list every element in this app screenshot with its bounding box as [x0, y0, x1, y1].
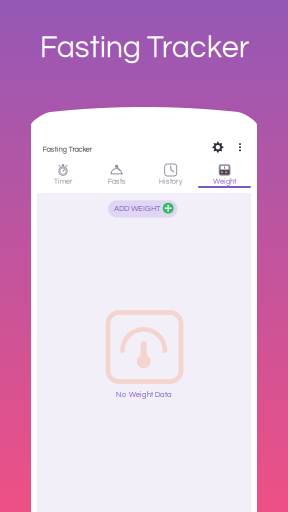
- staticText: History: [159, 178, 183, 185]
- staticText: No Weight Data: [116, 391, 172, 399]
- staticText: Fasting Tracker: [43, 146, 93, 153]
- button[interactable]: More options: [236, 140, 244, 154]
- staticText: Weight: [213, 178, 236, 185]
- staticText: Fasts: [108, 178, 126, 185]
- button[interactable]: Fasts: [90, 164, 143, 191]
- button[interactable]: Weight: [198, 164, 251, 191]
- staticText: Fasting Tracker: [40, 32, 249, 63]
- button[interactable]: Settings: [210, 139, 226, 155]
- button[interactable]: Timer: [36, 164, 90, 191]
- button[interactable]: History: [144, 164, 197, 191]
- staticText: Timer: [54, 178, 73, 185]
- staticText: ADD WEIGHT: [114, 205, 160, 213]
- button[interactable]: ADD WEIGHT: [108, 200, 177, 217]
